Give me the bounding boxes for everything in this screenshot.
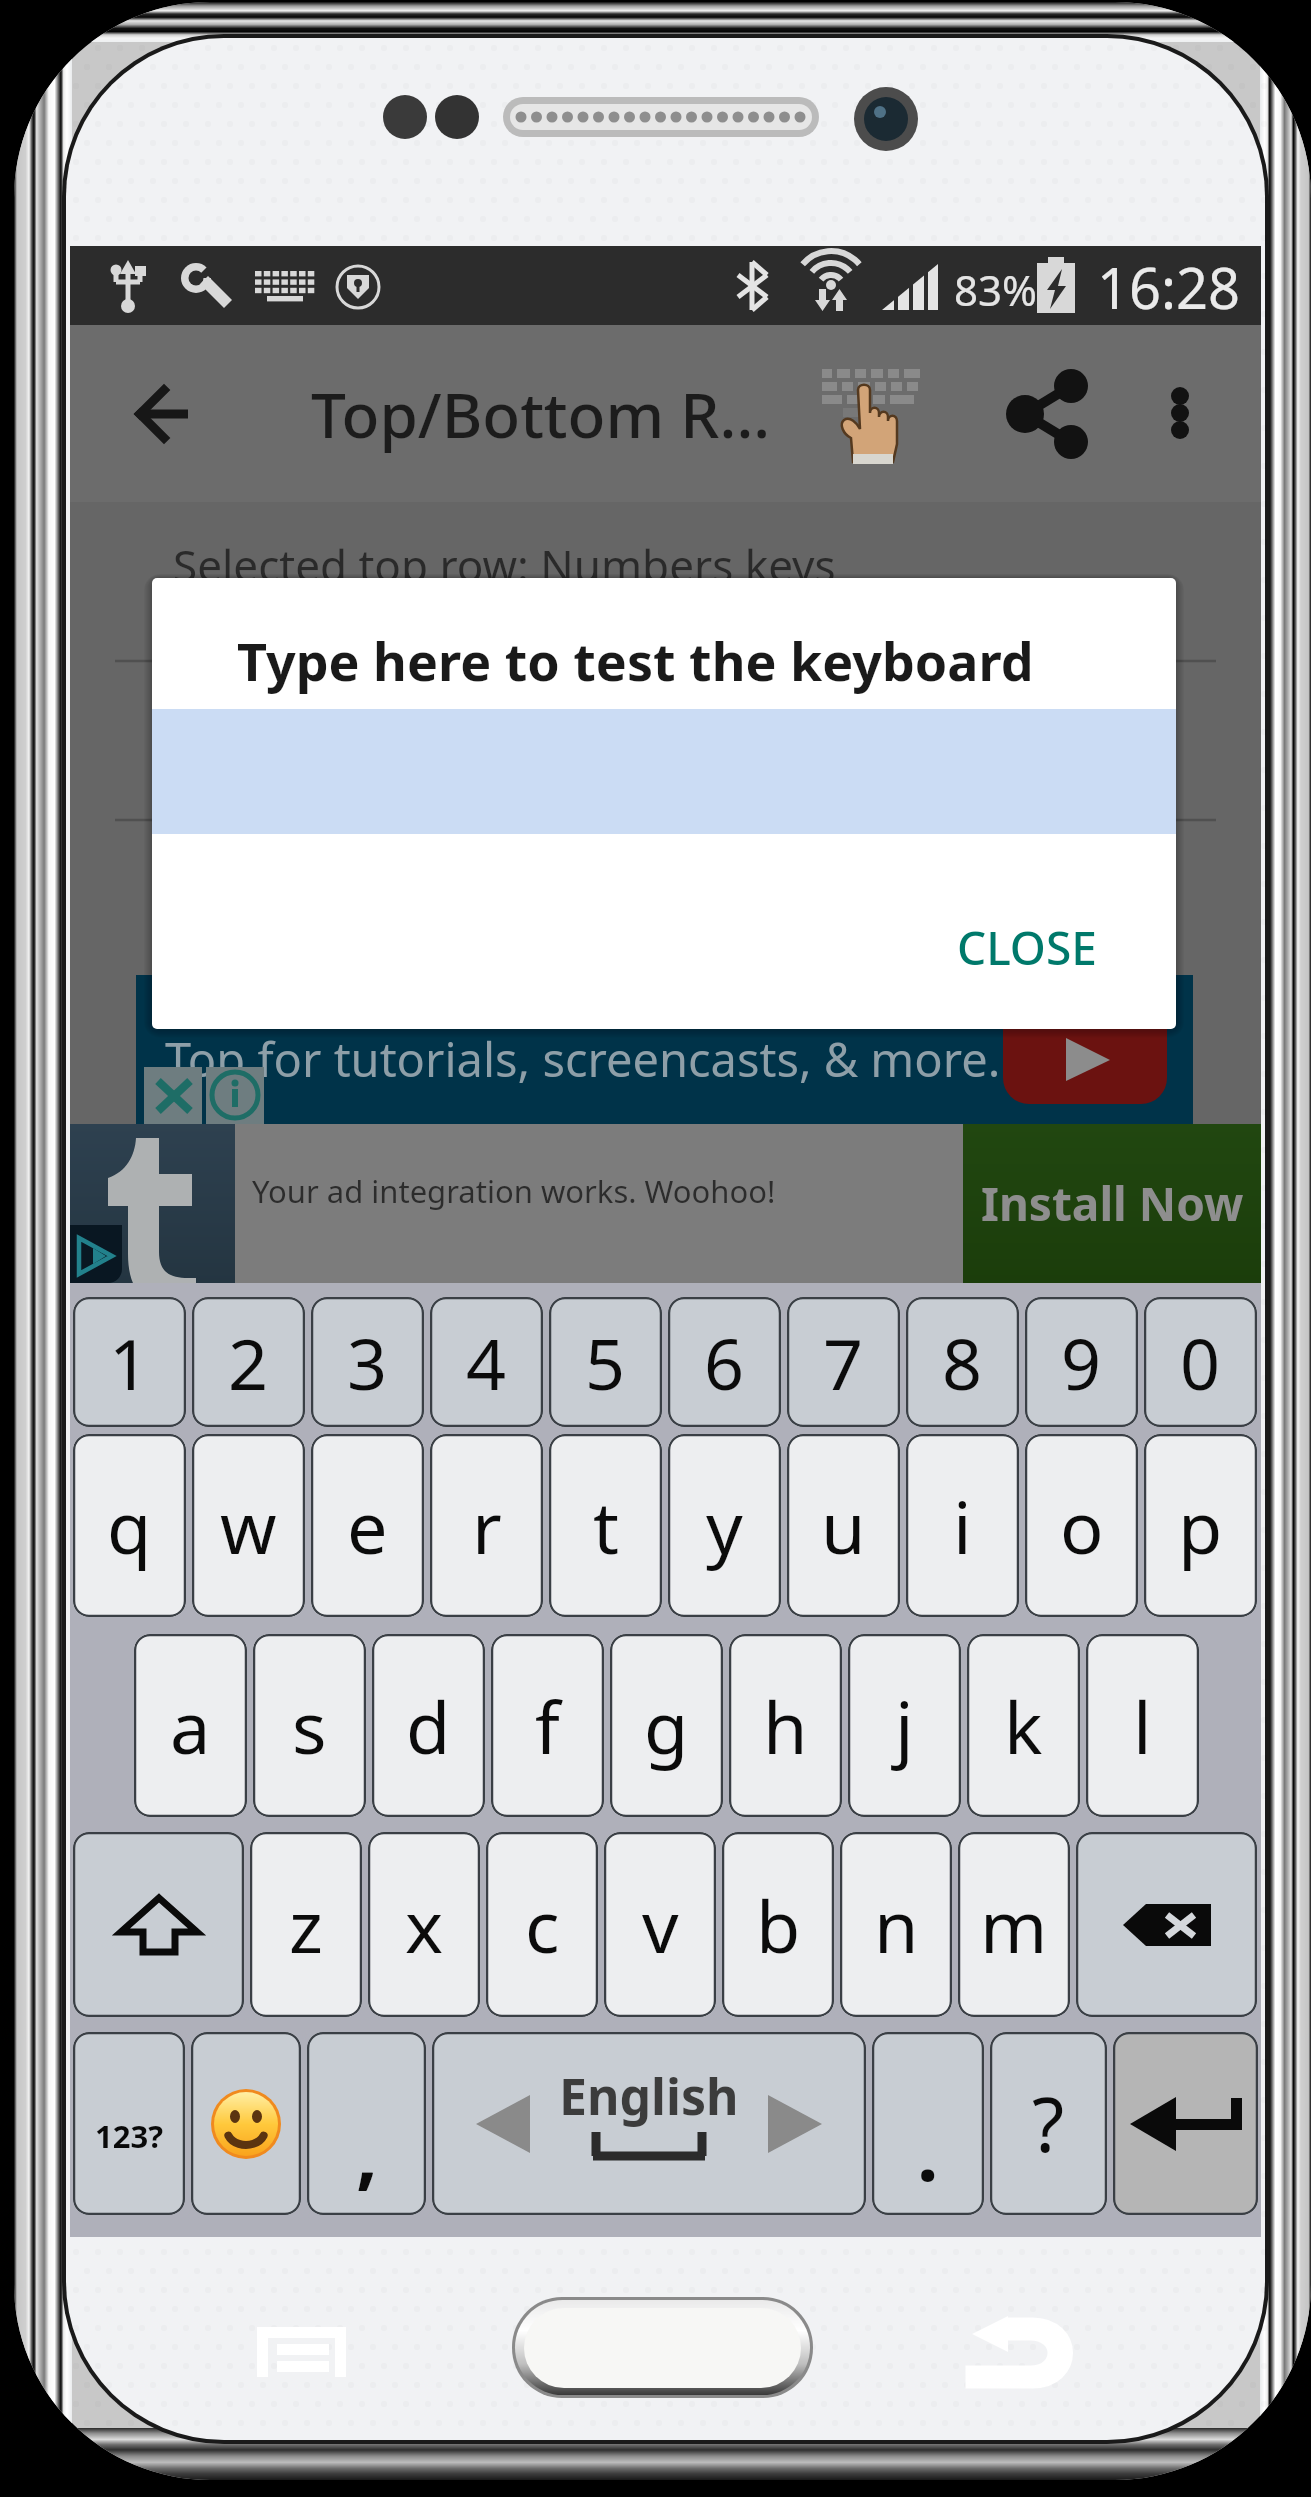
button[interactable]: 5 [549,1297,662,1427]
staticText: . [917,2100,939,2204]
staticText: ? [1032,2073,1065,2174]
button[interactable]: v [604,1832,716,2017]
button[interactable]: l [1086,1634,1199,1817]
button[interactable]: . [872,2032,984,2215]
button[interactable]: i [906,1434,1019,1617]
button[interactable]: w [192,1434,305,1617]
button[interactable]: c [486,1832,598,2017]
button[interactable]: 3 [311,1297,424,1427]
button[interactable]: 2 [192,1297,305,1427]
staticText: 6 [704,1315,745,1410]
staticText: y [706,1477,743,1575]
staticText: i [953,1477,972,1575]
staticText: g [644,1677,689,1775]
button[interactable]: Ad info [206,1067,264,1124]
button[interactable] [191,2032,301,2215]
staticText: 7 [823,1315,864,1410]
button[interactable]: ? [990,2032,1107,2215]
staticText: j [895,1677,914,1775]
staticText: Top for tutorials, screencasts, & more. [165,1027,1001,1091]
button[interactable]: a [134,1634,247,1817]
button[interactable]: m [958,1832,1070,2017]
button[interactable]: 6 [668,1297,781,1427]
button[interactable]: r [430,1434,543,1617]
staticText: h [763,1677,808,1775]
staticText: 0 [1180,1315,1221,1410]
button[interactable]: x [368,1832,480,2017]
button[interactable]: CLOSE [933,902,1121,993]
staticText: v [642,1876,679,1974]
staticText: 4 [466,1315,507,1410]
button[interactable]: 0 [1144,1297,1257,1427]
button[interactable] [73,1832,244,2017]
staticText: 16:28 [1097,249,1241,325]
staticText: r [472,1477,502,1575]
button[interactable]: 8 [906,1297,1019,1427]
staticText: d [406,1677,451,1775]
button[interactable]: Ad choices [70,1225,122,1283]
button[interactable]: t [549,1434,662,1617]
staticText: 9 [1061,1315,1102,1410]
button[interactable]: u [787,1434,900,1617]
staticText: u [821,1477,866,1575]
staticText: m [980,1876,1048,1974]
button[interactable]: Close ad [144,1067,202,1124]
button[interactable]: d [372,1634,485,1817]
button[interactable]: j [848,1634,961,1817]
staticText: 1 [109,1315,150,1410]
staticText: o [1060,1477,1104,1575]
staticText: x [405,1876,444,1974]
button[interactable]: 123? [73,2032,185,2215]
staticText: 123? [95,2115,163,2157]
staticText: Install Now [981,1172,1244,1235]
button[interactable]: , [307,2032,426,2215]
button[interactable]: p [1144,1434,1257,1617]
staticText: 5 [585,1315,626,1410]
button[interactable]: o [1025,1434,1138,1617]
button[interactable] [1076,1832,1257,2017]
staticText: 3 [347,1315,388,1410]
button[interactable]: 4 [430,1297,543,1427]
staticText: a [170,1677,211,1775]
button[interactable]: n [840,1832,952,2017]
button[interactable]: Install Now [963,1124,1261,1283]
button[interactable]: More options [1130,363,1230,463]
staticText: f [535,1677,560,1775]
button[interactable]: b [722,1832,834,2017]
staticText: Selected top row: Numbers keys [173,535,836,595]
button[interactable]: g [610,1634,723,1817]
staticText: Type here to test the keyboard [237,625,1034,696]
staticText: e [347,1477,388,1575]
staticText: Top/Bottom R... [311,372,771,456]
button[interactable]: Share [973,361,1123,467]
staticText: 8 [942,1315,983,1410]
button[interactable]: 9 [1025,1297,1138,1427]
staticText: b [756,1876,801,1974]
button[interactable]: k [967,1634,1080,1817]
button[interactable]: f [491,1634,604,1817]
button[interactable]: s [253,1634,366,1817]
staticText: t [593,1477,619,1575]
button[interactable] [1113,2032,1258,2215]
button[interactable]: y [668,1434,781,1617]
staticText: w [220,1477,277,1575]
staticText: k [1004,1677,1043,1775]
button[interactable]: Navigate up [110,364,216,464]
button[interactable]: h [729,1634,842,1817]
staticText: l [1133,1677,1152,1775]
button[interactable]: 1 [73,1297,186,1427]
staticText: 83% [954,261,1037,318]
button[interactable]: English [432,2032,866,2215]
staticText: q [107,1477,152,1575]
staticText: s [292,1677,327,1775]
button[interactable]: q [73,1434,186,1617]
button[interactable]: 7 [787,1297,900,1427]
button[interactable]: Test keyboard [800,353,940,477]
staticText: CLOSE [957,916,1097,979]
button[interactable]: e [311,1434,424,1617]
staticText: , [356,2100,378,2204]
staticText: 2 [228,1315,269,1410]
button[interactable]: z [250,1832,362,2017]
button[interactable]: Play video [1003,984,1167,1104]
staticText: Your ad integration works. Woohoo! [252,1170,776,1212]
